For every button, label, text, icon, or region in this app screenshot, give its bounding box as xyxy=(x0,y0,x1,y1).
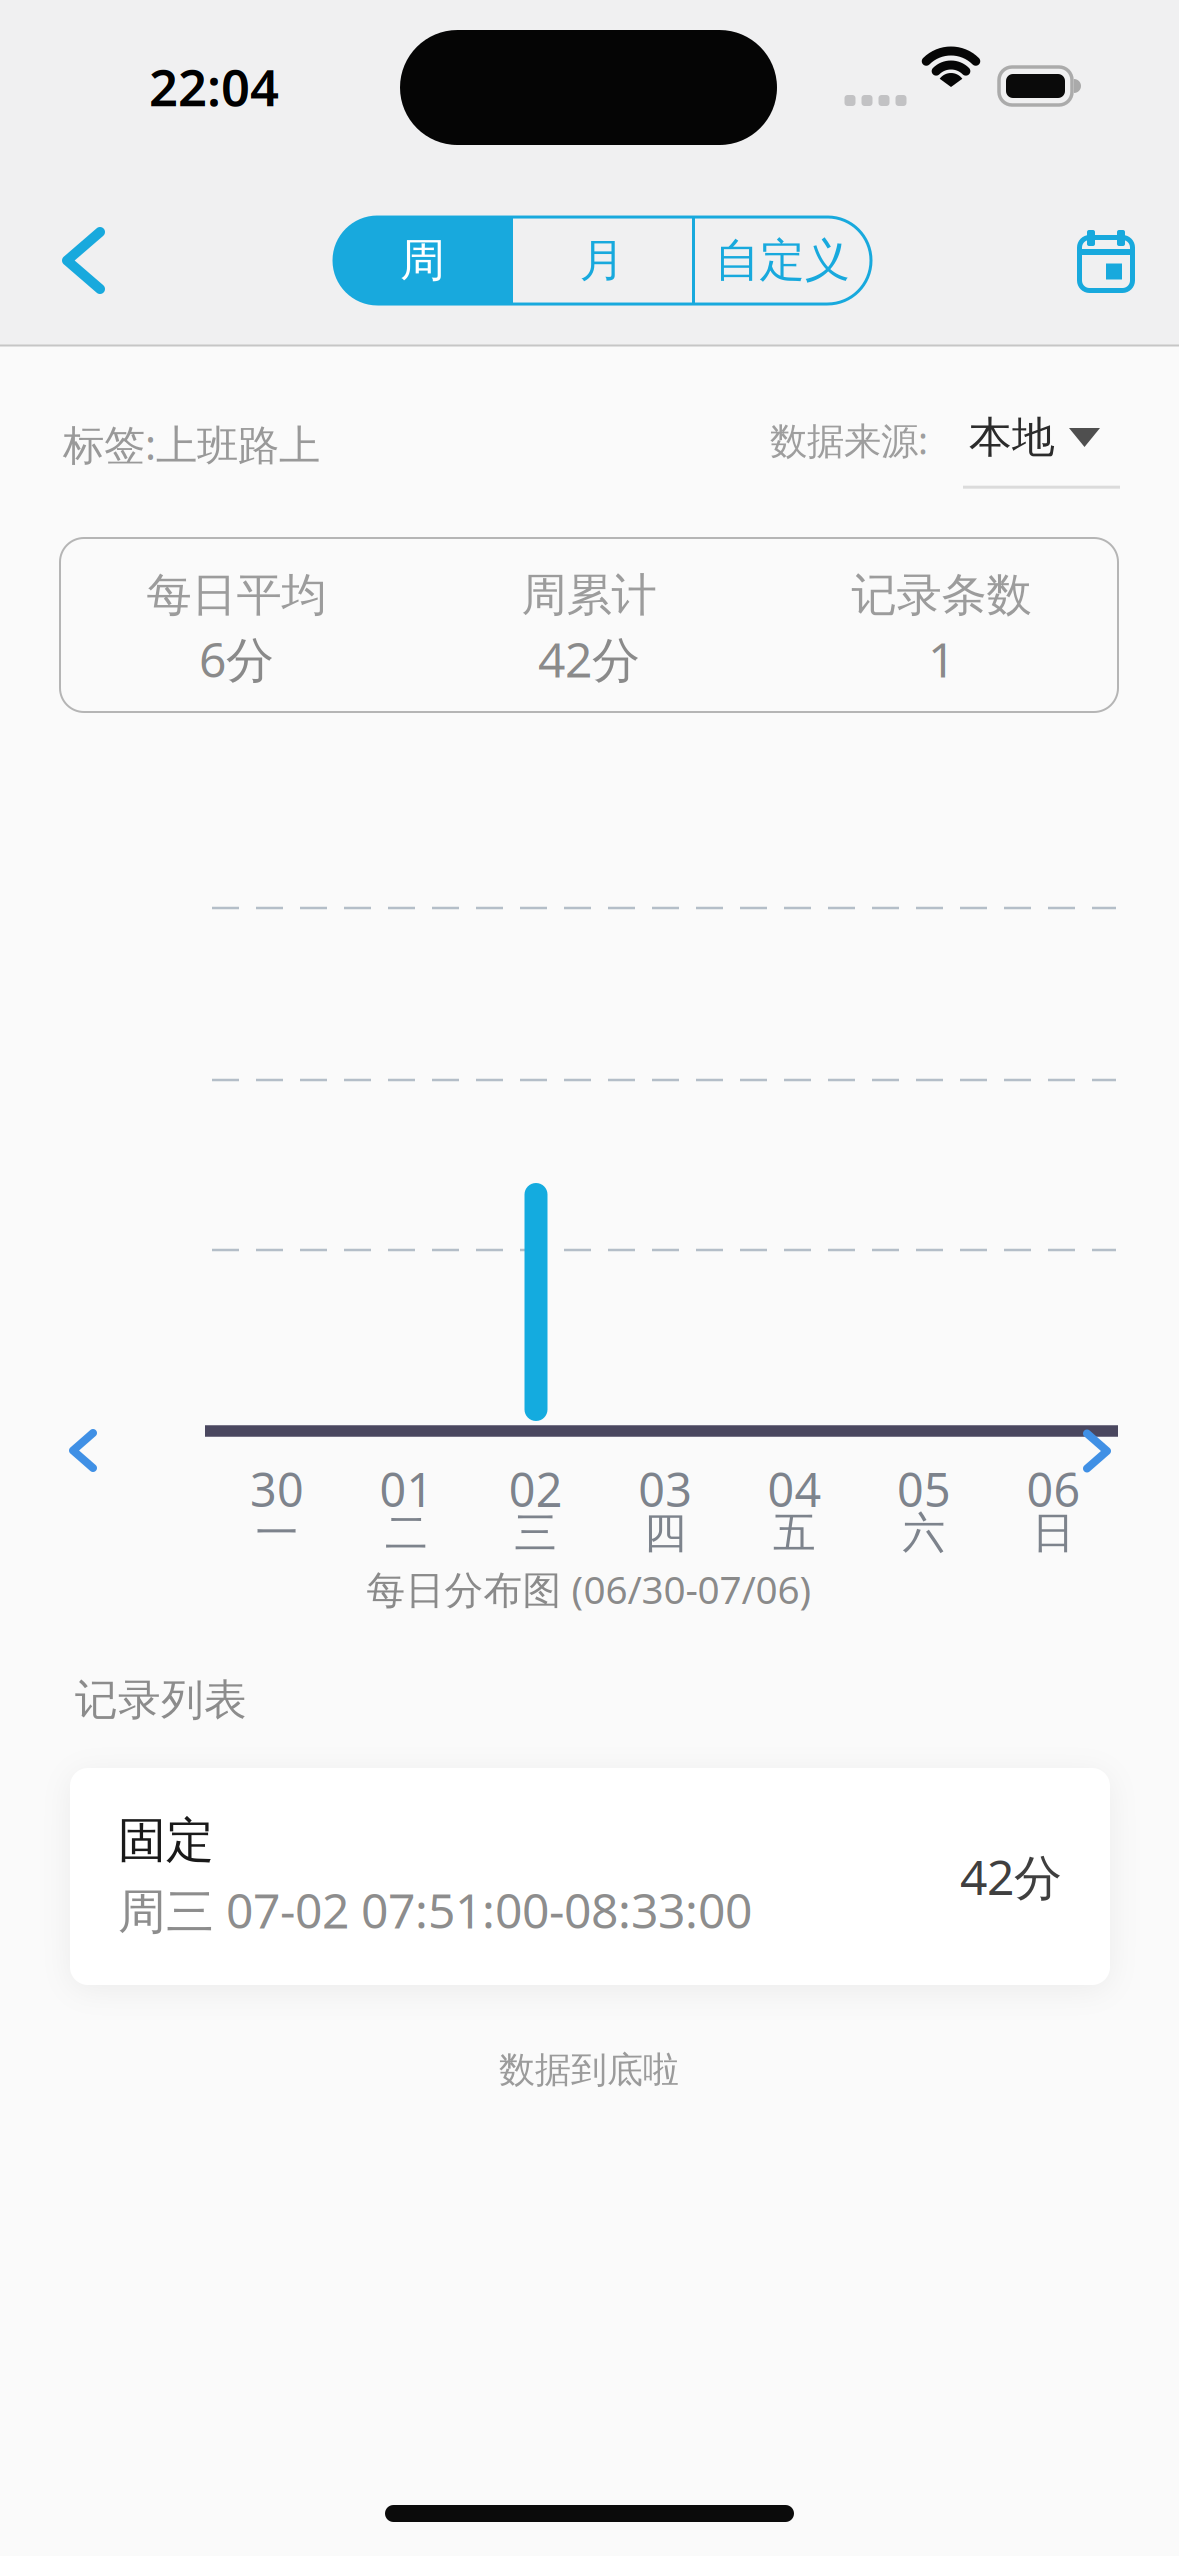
staticText: 周三 07-02 07:51:00-08:33:00 xyxy=(118,1878,752,1942)
button[interactable]: Next week xyxy=(1062,1416,1132,1486)
staticText: 42分 xyxy=(960,1845,1062,1908)
staticText: 06 xyxy=(1026,1458,1080,1520)
staticText: 一 xyxy=(255,1507,298,1559)
staticText: 22:04 xyxy=(149,53,279,120)
staticText: 周累计 xyxy=(521,567,656,623)
staticText: 数据到底啦 xyxy=(499,2048,679,2092)
staticText: 自定义 xyxy=(714,233,849,288)
button[interactable]: 周 xyxy=(334,217,511,304)
staticText: 日 xyxy=(1032,1507,1075,1559)
staticText: 02 xyxy=(509,1458,563,1520)
staticText: 30 xyxy=(250,1458,304,1520)
button[interactable]: 自定义 xyxy=(693,217,871,304)
staticText: 固定 xyxy=(118,1811,214,1870)
staticText: 五 xyxy=(773,1507,816,1559)
button[interactable]: 月 xyxy=(511,217,693,304)
staticText: 标签:上班路上 xyxy=(63,417,320,471)
staticText: 每日分布图 (06/30-07/06) xyxy=(366,1563,811,1615)
staticText: 05 xyxy=(897,1458,951,1520)
staticText: 01 xyxy=(379,1458,433,1520)
staticText: 数据来源: xyxy=(770,415,928,465)
staticText: 月 xyxy=(579,233,624,288)
staticText: 四 xyxy=(644,1507,687,1559)
staticText: 每日平均 xyxy=(146,567,326,623)
staticText: 记录列表 xyxy=(75,1674,247,1726)
staticText: 04 xyxy=(768,1458,822,1520)
staticText: 记录条数 xyxy=(852,567,1032,623)
staticText: 6分 xyxy=(199,627,274,691)
staticText: 1 xyxy=(928,627,955,691)
staticText: 三 xyxy=(514,1507,557,1559)
staticText: 42分 xyxy=(538,627,640,691)
staticText: 03 xyxy=(638,1458,692,1520)
button[interactable]: Calendar xyxy=(1056,210,1156,310)
staticText: 六 xyxy=(902,1507,945,1559)
staticText: 二 xyxy=(385,1507,428,1559)
button[interactable]: Previous week xyxy=(48,1415,118,1485)
staticText: 本地 xyxy=(969,411,1055,464)
staticText: 周 xyxy=(400,233,445,288)
button[interactable]: Back xyxy=(28,205,138,315)
button[interactable]: 固定 xyxy=(70,1768,1110,1985)
button[interactable]: 本地 xyxy=(921,411,1161,489)
